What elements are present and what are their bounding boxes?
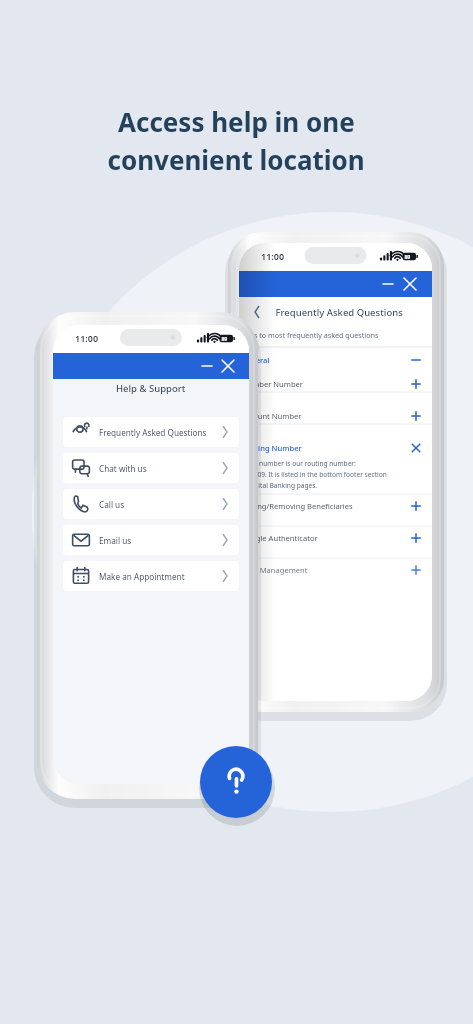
button[interactable]: Frequently Asked Questions bbox=[63, 406, 249, 436]
button[interactable]: Call us bbox=[63, 478, 249, 508]
button[interactable]: Email us bbox=[63, 514, 249, 544]
button[interactable]: Chat with us bbox=[63, 442, 249, 472]
button[interactable]: Help bbox=[200, 746, 272, 818]
button[interactable]: Make an Appointment bbox=[63, 550, 249, 580]
